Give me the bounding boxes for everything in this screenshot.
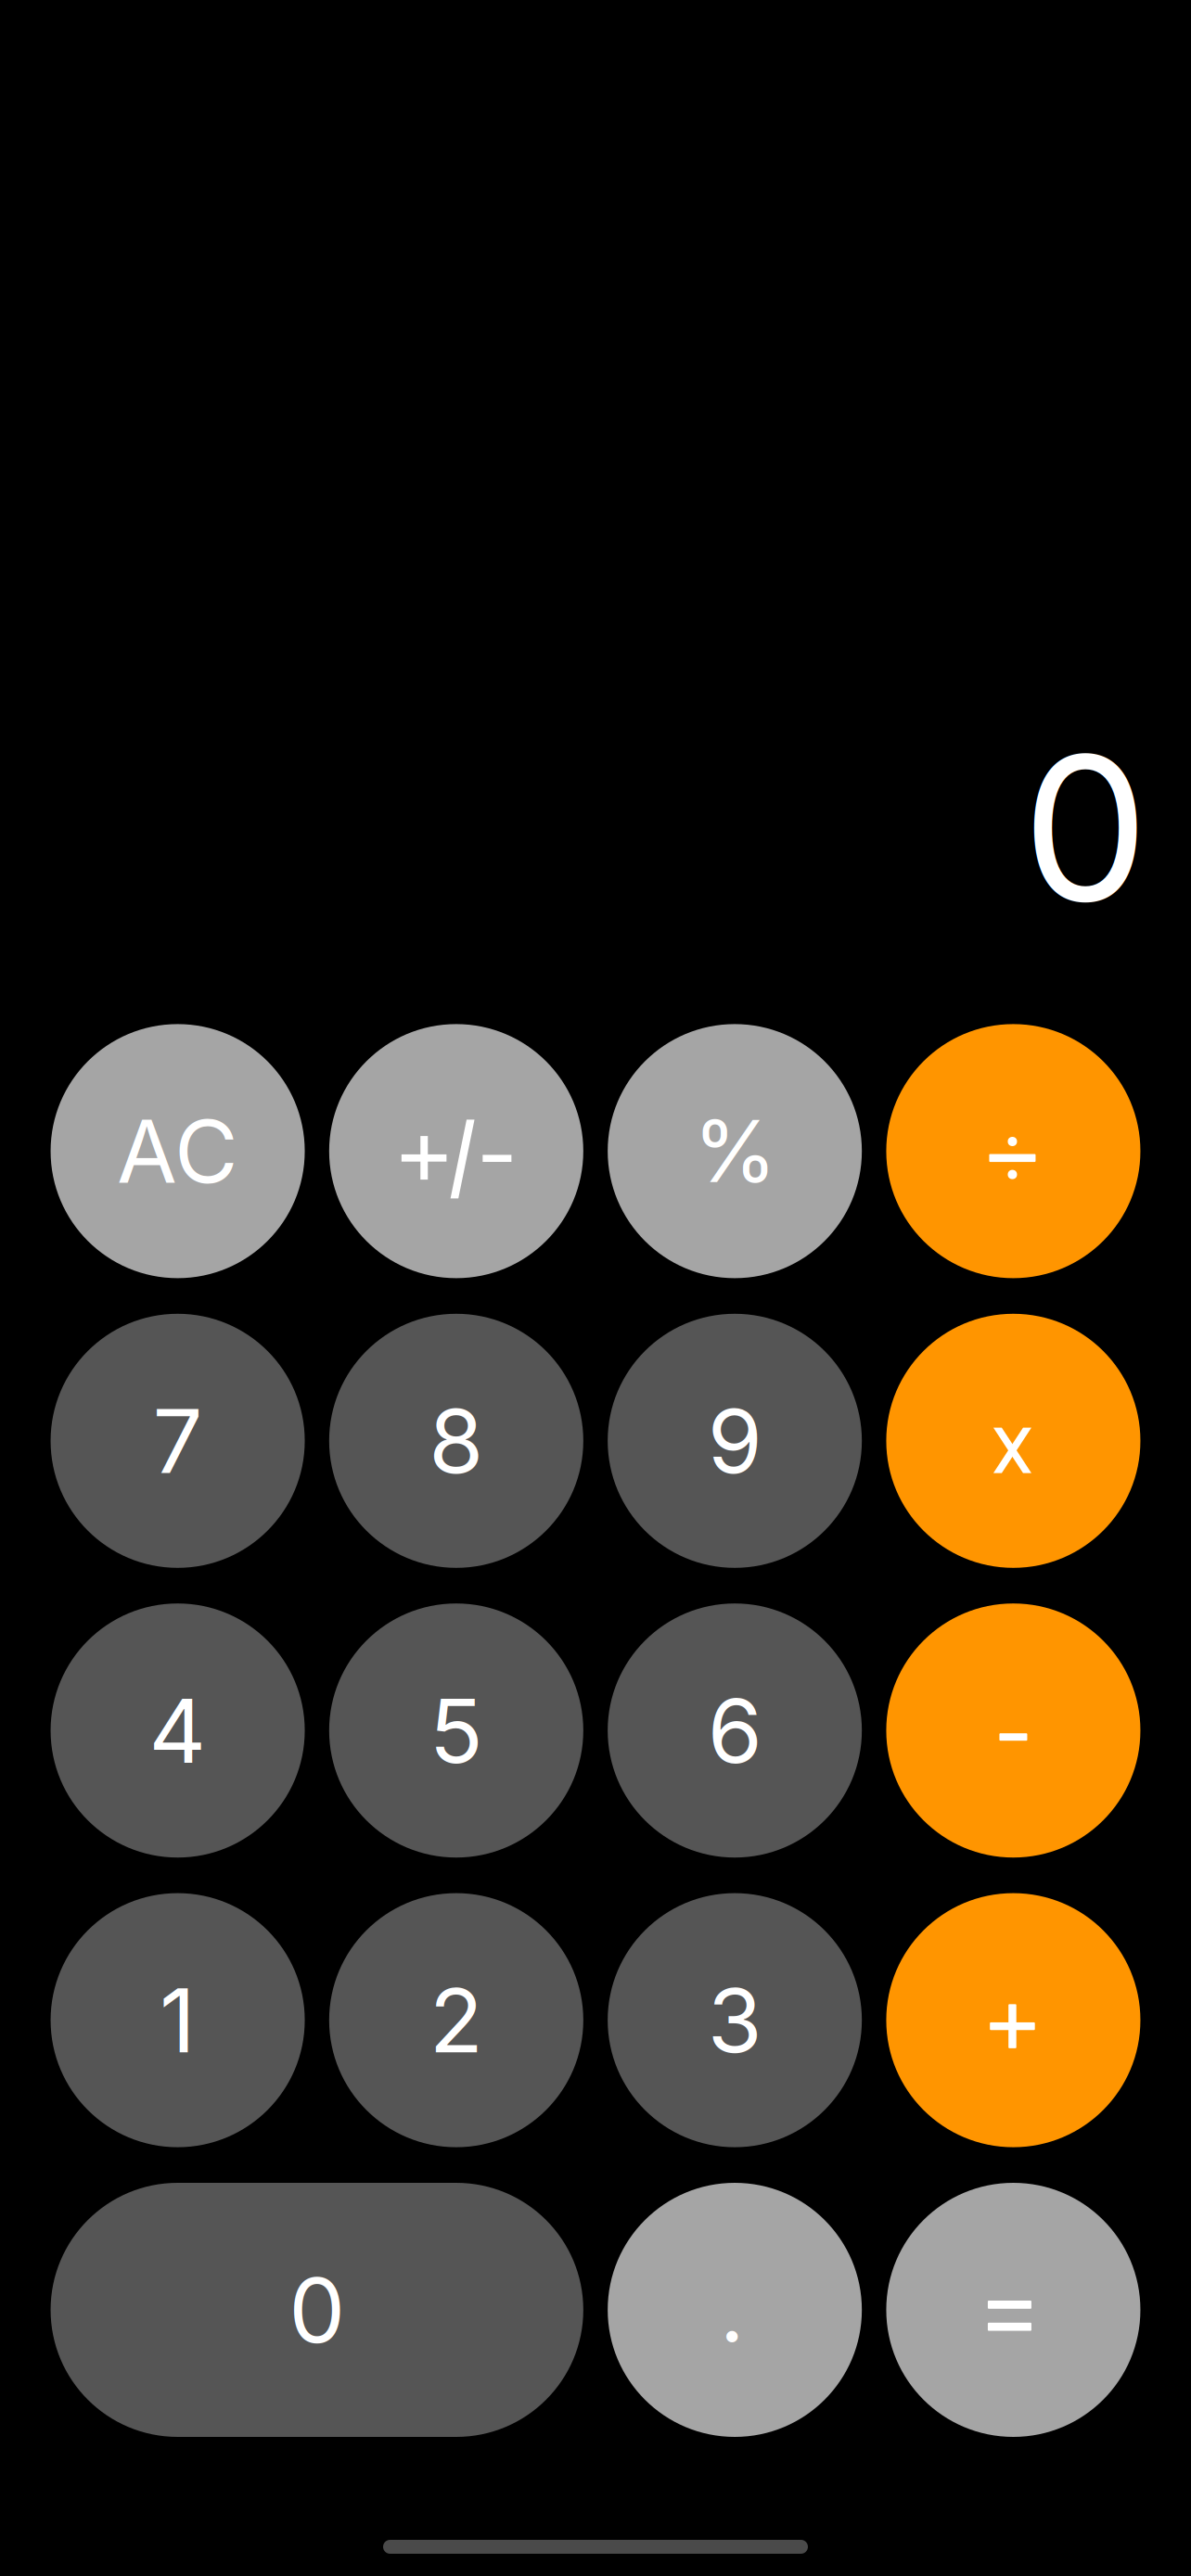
staticText: 6 [707, 1677, 762, 1784]
button[interactable]: Minus [886, 1603, 1140, 1858]
button[interactable]: 4 [51, 1603, 305, 1858]
button[interactable]: Plus minus [329, 1024, 583, 1278]
button[interactable]: % [608, 1024, 862, 1278]
button[interactable]: 6 [608, 1603, 862, 1858]
button[interactable]: Equals [886, 2183, 1140, 2437]
button[interactable]: . [608, 2183, 862, 2437]
staticText: 3 [707, 1967, 762, 2074]
staticText: . [719, 2257, 744, 2362]
button[interactable]: 1 [51, 1893, 305, 2147]
button[interactable]: 9 [608, 1314, 862, 1568]
staticText: 2 [429, 1967, 483, 2074]
staticText: 7 [153, 1387, 203, 1494]
staticText: 4 [149, 1677, 206, 1784]
staticText: 1 [160, 1967, 196, 2074]
button[interactable]: 2 [329, 1893, 583, 2147]
button[interactable]: AC [51, 1024, 305, 1278]
button[interactable]: Plus [886, 1893, 1140, 2147]
staticText: AC [117, 1098, 238, 1204]
staticText: 8 [429, 1387, 484, 1494]
button[interactable]: 3 [608, 1893, 862, 2147]
button[interactable]: Divide [886, 1024, 1140, 1278]
staticText: % [693, 1099, 776, 1203]
staticText: 5 [429, 1677, 483, 1784]
button[interactable]: 7 [51, 1314, 305, 1568]
staticText: 0 [1022, 707, 1148, 949]
button[interactable]: 8 [329, 1314, 583, 1568]
button[interactable]: 0 [51, 2183, 583, 2437]
staticText: 0 [289, 2256, 345, 2364]
staticText: 9 [707, 1387, 762, 1494]
button[interactable]: 5 [329, 1603, 583, 1858]
button[interactable]: Multiply [886, 1314, 1140, 1568]
